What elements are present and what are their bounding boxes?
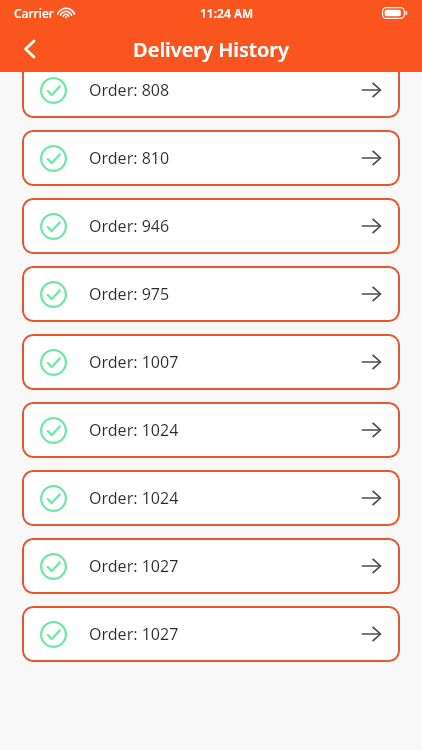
staticText: Order: 1024 [89,419,179,441]
staticText: Order: 808 [89,79,170,101]
button[interactable]: Order: 1007 [22,334,400,390]
staticText: Order: 1007 [89,351,179,373]
button[interactable]: Order: 1027 [22,538,400,594]
button[interactable]: Order: 946 [22,198,400,254]
staticText: Carrier [14,5,54,21]
button[interactable]: Back [8,27,52,71]
staticText: Order: 975 [89,283,170,305]
staticText: Order: 1027 [89,555,179,577]
button[interactable]: Order: 975 [22,266,400,322]
staticText: Order: 946 [89,215,170,237]
staticText: 11:24 AM [200,5,254,21]
button[interactable]: Order: 1027 [22,606,400,662]
button[interactable]: Order: 1024 [22,470,400,526]
staticText: Delivery History [133,36,289,63]
button[interactable]: Order: 810 [22,130,400,186]
staticText: Order: 1027 [89,623,179,645]
button[interactable]: Order: 1024 [22,402,400,458]
button[interactable]: Order: 808 [22,62,400,118]
staticText: Order: 1024 [89,487,179,509]
staticText: Order: 810 [89,147,170,169]
